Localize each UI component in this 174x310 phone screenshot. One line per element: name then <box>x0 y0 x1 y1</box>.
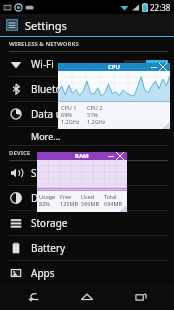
staticText: Settings <box>25 18 67 33</box>
button[interactable]: Home <box>67 284 107 310</box>
staticText: 51% <box>87 111 98 118</box>
staticText: Wi-Fi <box>31 57 54 71</box>
other: Display <box>10 192 22 204</box>
button[interactable]: Storage <box>0 211 174 235</box>
button[interactable]: Wi-Fi <box>0 52 174 76</box>
staticText: 694MB <box>104 200 123 207</box>
button[interactable]: Sound <box>0 161 174 185</box>
other: Data usage <box>10 108 22 120</box>
other: Sound <box>10 167 22 179</box>
button[interactable]: Recents <box>121 284 161 310</box>
staticText: Usage <box>39 193 56 200</box>
staticText: 22:38 <box>150 2 171 13</box>
button[interactable]: Display <box>0 186 174 210</box>
staticText: More... <box>31 130 61 142</box>
staticText: Data usage <box>31 107 85 121</box>
staticText: Display <box>31 191 66 205</box>
staticText: Sound <box>31 166 62 180</box>
staticText: ON <box>152 61 162 69</box>
staticText: Used <box>81 193 95 200</box>
staticText: DEVICE <box>9 149 31 157</box>
staticText: 1.2GHz <box>87 118 106 125</box>
other: Bluetooth <box>10 83 22 95</box>
staticText: Bluetooth <box>31 82 78 96</box>
button[interactable]: Apps <box>0 261 174 284</box>
other: Apps <box>10 267 22 279</box>
other: Storage <box>10 217 22 229</box>
staticText: Total <box>104 193 117 200</box>
staticText: Battery <box>31 241 66 255</box>
button[interactable]: More... <box>0 127 174 145</box>
other: Wi-Fi <box>10 58 22 70</box>
button[interactable]: Bluetooth <box>0 77 174 101</box>
staticText: CPU 1 <box>61 104 77 111</box>
staticText: RAM <box>75 152 89 160</box>
staticText: Apps <box>31 266 55 280</box>
staticText: WIRELESS & NETWORKS <box>9 40 79 48</box>
staticText: CPU 2 <box>87 104 103 111</box>
staticText: Free <box>60 193 72 200</box>
staticText: 125MB <box>60 200 79 207</box>
staticText: Storage <box>31 216 68 230</box>
button[interactable]: RAM <box>37 152 127 212</box>
staticText: 1.2GHz <box>61 118 80 125</box>
button[interactable]: Close <box>115 152 125 160</box>
button[interactable]: Back <box>14 284 54 310</box>
other: Battery <box>10 242 22 254</box>
button[interactable]: Settings <box>0 14 174 36</box>
button[interactable]: Data usage <box>0 102 174 126</box>
button[interactable]: Minimize <box>150 63 158 71</box>
staticText: 69% <box>61 111 72 118</box>
staticText: 569MB <box>81 200 100 207</box>
button[interactable]: Close <box>158 63 168 71</box>
button[interactable]: Battery <box>0 236 174 260</box>
button[interactable]: Minimize <box>107 152 115 160</box>
button[interactable]: CPU <box>58 63 170 129</box>
staticText: CPU <box>108 63 121 71</box>
staticText: 82% <box>39 200 50 207</box>
